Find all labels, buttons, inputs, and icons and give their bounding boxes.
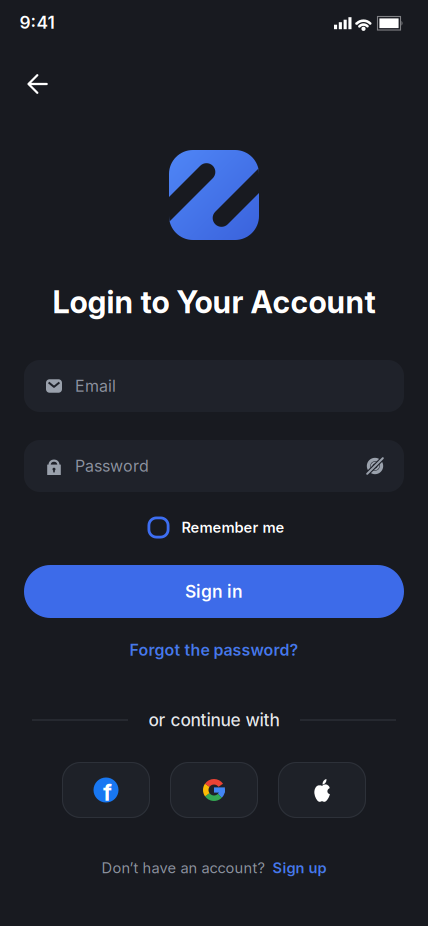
- staticText: Don’t have an account?: [101, 859, 264, 877]
- staticText: Forgot the password?: [129, 641, 298, 659]
- staticText: Remember me: [181, 519, 284, 536]
- staticText: or continue with: [148, 710, 279, 730]
- staticText: Email: [75, 377, 116, 395]
- staticText: Password: [75, 457, 149, 475]
- button[interactable]: Back: [15, 62, 59, 106]
- staticText: Sign in: [185, 581, 243, 602]
- staticText: Login to Your Account: [52, 284, 375, 320]
- button[interactable]: Sign in: [24, 565, 404, 618]
- button[interactable]: Remember me: [147, 516, 284, 538]
- staticText: f: [103, 779, 112, 806]
- staticText: 9:41: [19, 12, 54, 33]
- button[interactable]: Show password: [356, 440, 394, 492]
- button[interactable]: Continue with Google: [170, 762, 258, 818]
- button[interactable]: Continue with Facebook: [62, 762, 150, 818]
- staticText: Sign up: [272, 859, 326, 877]
- button[interactable]: Forgot the password?: [129, 641, 298, 659]
- button[interactable]: Continue with Apple: [278, 762, 366, 818]
- button[interactable]: Sign up: [272, 859, 326, 877]
